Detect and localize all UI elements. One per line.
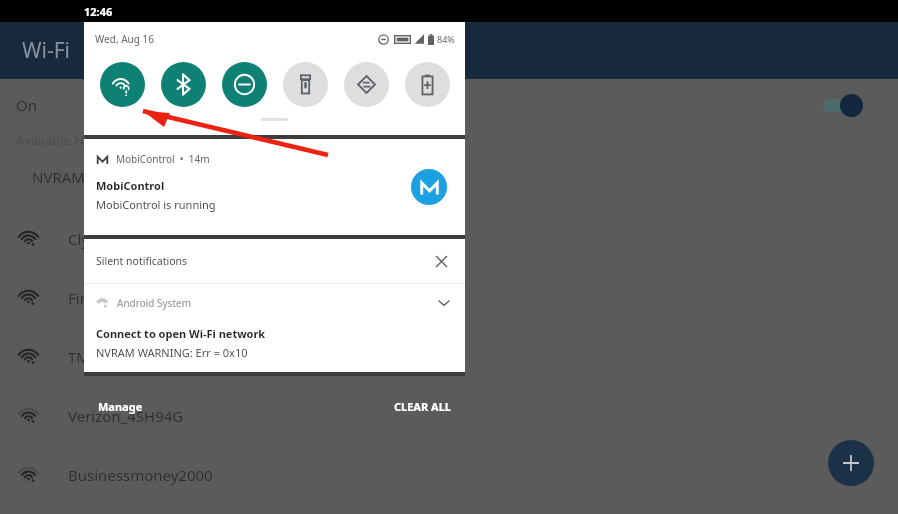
staticText: Firetwo <box>68 288 121 308</box>
staticText: Businessmoney2000 <box>68 465 213 485</box>
button[interactable]: Verizon_4SH94G <box>0 386 898 445</box>
button[interactable]: Wi-Fi toggle <box>818 93 864 117</box>
staticText: 84% <box>437 33 455 45</box>
staticText: NVRAM WARNING: Err = 0x10 <box>96 345 248 360</box>
button[interactable]: MobiControl • 14m <box>84 139 465 235</box>
staticText: On <box>16 95 37 115</box>
button[interactable]: TMOBILE-9C50 <box>0 327 898 386</box>
staticText: Connect to open Wi-Fi network <box>96 326 266 341</box>
staticText: 12:46 <box>84 4 113 19</box>
button[interactable]: Add network <box>828 440 874 486</box>
button[interactable]: Auto rotate <box>336 55 397 113</box>
staticText: Verizon_4SH94G <box>68 406 184 426</box>
staticText: MobiControl is running <box>96 197 216 212</box>
staticText: Wed, Aug 16 <box>95 32 154 46</box>
staticText: NVRAM WARNING: Err = 0x10 <box>32 167 239 187</box>
staticText: MobiControl <box>96 178 165 193</box>
staticText: Wi-Fi <box>22 36 71 65</box>
staticText: MobiControl • 14m <box>116 152 210 166</box>
button[interactable]: Flashlight <box>275 55 336 113</box>
staticText: Android System <box>117 296 192 310</box>
button[interactable]: Bluetooth <box>153 55 214 113</box>
button[interactable]: Clear silent notifications <box>429 249 453 273</box>
button[interactable]: On <box>0 79 898 131</box>
button[interactable]: Expand notification <box>433 292 455 314</box>
button[interactable]: Businessmoney2000 <box>0 445 898 504</box>
button[interactable]: Android System <box>84 284 465 372</box>
staticText: Clyde <box>68 229 107 249</box>
button[interactable]: Clyde <box>0 209 898 268</box>
staticText: TMOBILE-9C50 <box>68 347 173 367</box>
staticText: Silent notifications <box>96 254 188 268</box>
button[interactable]: Wi-Fi <box>91 55 153 113</box>
staticText: Manage <box>98 399 143 414</box>
button[interactable]: Do not disturb <box>214 55 275 113</box>
staticText: Available Networks <box>16 131 133 149</box>
button[interactable]: Battery saver <box>397 55 458 113</box>
button[interactable]: Firetwo <box>0 268 898 327</box>
button[interactable]: CLEAR ALL <box>380 396 465 417</box>
staticText: CLEAR ALL <box>394 399 451 414</box>
button[interactable]: Manage <box>84 396 157 417</box>
